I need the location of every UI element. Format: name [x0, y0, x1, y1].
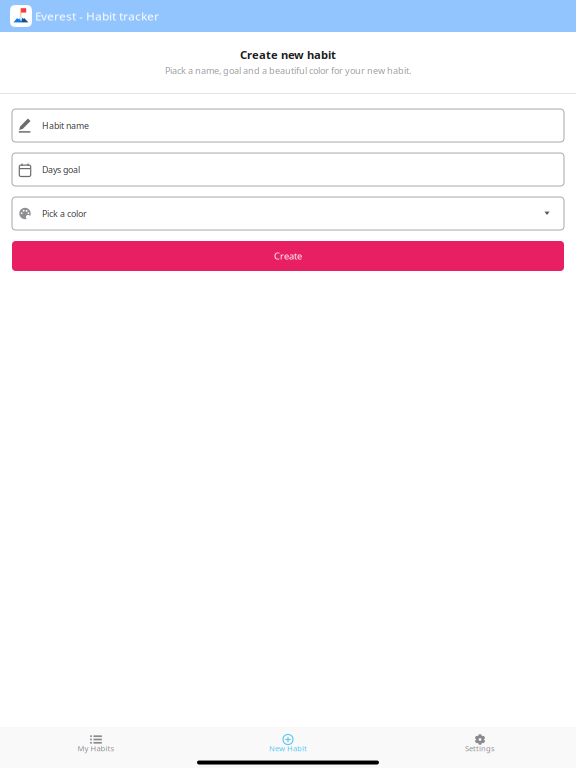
- staticText: Habit name: [42, 119, 89, 131]
- staticText: Settings: [465, 743, 495, 753]
- button[interactable]: Settings: [384, 727, 576, 759]
- staticText: Create new habit: [240, 47, 336, 62]
- button[interactable]: New Habit: [192, 727, 384, 759]
- staticText: Days goal: [42, 163, 80, 175]
- staticText: Create: [274, 250, 302, 262]
- staticText: Pick a color: [42, 207, 87, 219]
- button[interactable]: My Habits: [0, 727, 192, 759]
- button[interactable]: Pick a color: [12, 197, 564, 230]
- button[interactable]: Habit name: [12, 109, 564, 142]
- button[interactable]: Days goal: [12, 153, 564, 186]
- staticText: My Habits: [77, 743, 114, 753]
- staticText: New Habit: [269, 743, 307, 753]
- staticText: Piack a name, goal and a beautiful color…: [165, 64, 411, 77]
- staticText: Everest - Habit tracker: [35, 8, 159, 24]
- button[interactable]: Create: [12, 241, 564, 271]
